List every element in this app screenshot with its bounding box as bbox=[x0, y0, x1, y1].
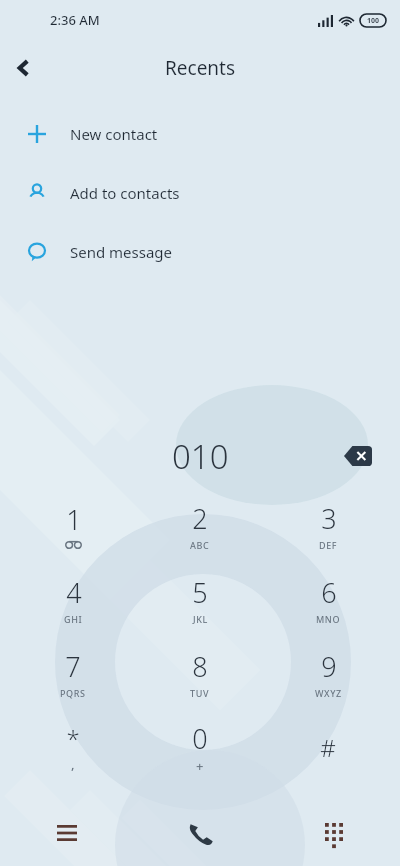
button[interactable]: 9 bbox=[273, 636, 383, 710]
button[interactable]: 2 bbox=[145, 488, 255, 562]
button[interactable]: Call bbox=[134, 800, 267, 866]
staticText: 3 bbox=[321, 500, 337, 537]
button[interactable]: * bbox=[18, 710, 128, 784]
button[interactable]: Send message bbox=[0, 222, 400, 281]
staticText: , bbox=[71, 755, 76, 773]
button[interactable]: 5 bbox=[145, 562, 255, 636]
staticText: 2:36 AM bbox=[50, 11, 100, 29]
button[interactable]: 7 bbox=[18, 636, 128, 710]
staticText: MNO bbox=[316, 613, 341, 625]
staticText: 2 bbox=[192, 500, 208, 537]
button[interactable]: Add to contacts bbox=[0, 163, 400, 222]
button[interactable]: Delete bbox=[338, 436, 378, 476]
button[interactable]: Dialpad bbox=[267, 800, 400, 866]
staticText: DEF bbox=[319, 539, 338, 551]
staticText: Add to contacts bbox=[70, 183, 180, 203]
staticText: 010 bbox=[172, 434, 229, 479]
staticText: GHI bbox=[64, 613, 83, 625]
staticText: * bbox=[66, 722, 80, 755]
staticText: 7 bbox=[65, 648, 81, 685]
button[interactable]: 3 bbox=[273, 488, 383, 562]
staticText: 0 bbox=[192, 720, 208, 757]
staticText: ABC bbox=[190, 539, 210, 551]
button[interactable]: # bbox=[273, 710, 383, 784]
staticText: # bbox=[320, 731, 336, 764]
button[interactable]: Menu bbox=[0, 800, 134, 866]
button[interactable]: 4 bbox=[18, 562, 128, 636]
staticText: 100 bbox=[367, 16, 380, 26]
button[interactable]: New contact bbox=[0, 104, 400, 163]
staticText: TUV bbox=[190, 687, 210, 699]
staticText: Send message bbox=[70, 242, 173, 262]
button[interactable]: Back bbox=[0, 44, 48, 92]
button[interactable]: 6 bbox=[273, 562, 383, 636]
staticText: WXYZ bbox=[315, 687, 342, 699]
staticText: JKL bbox=[193, 613, 208, 625]
staticText: 1 bbox=[66, 501, 82, 538]
staticText: 8 bbox=[192, 648, 208, 685]
staticText: Recents bbox=[165, 55, 236, 81]
staticText: PQRS bbox=[60, 687, 86, 699]
staticText: New contact bbox=[70, 124, 158, 144]
staticText: 9 bbox=[321, 648, 337, 685]
button[interactable]: 1 bbox=[18, 488, 128, 562]
button[interactable]: 8 bbox=[145, 636, 255, 710]
button[interactable]: 0 bbox=[145, 710, 255, 784]
staticText: 4 bbox=[66, 574, 82, 611]
staticText: 5 bbox=[192, 574, 208, 611]
staticText: 6 bbox=[321, 574, 337, 611]
staticText: + bbox=[196, 757, 205, 775]
